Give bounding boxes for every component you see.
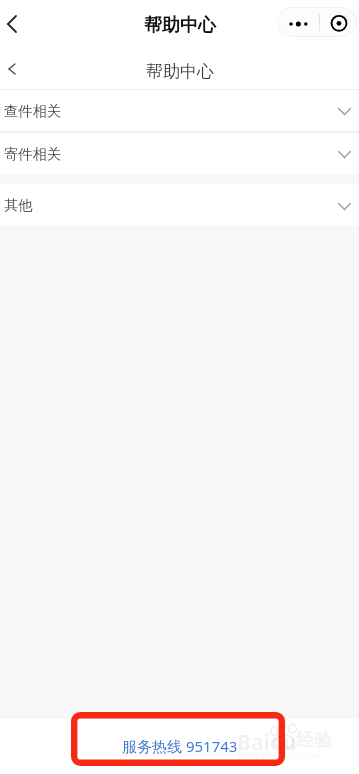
staticText: 经验 bbox=[296, 729, 332, 752]
staticText: 帮助中心 bbox=[146, 61, 214, 82]
button[interactable]: More options bbox=[277, 7, 319, 37]
button[interactable]: 服务热线 951743 bbox=[0, 719, 359, 774]
button[interactable]: Back bbox=[0, 0, 23, 44]
button[interactable]: Close mini program bbox=[320, 7, 356, 37]
staticText: jingyan.baidu.com bbox=[238, 749, 321, 762]
button[interactable]: 查件相关 bbox=[0, 90, 359, 131]
staticText: 其他 bbox=[4, 196, 33, 214]
button[interactable]: 其他 bbox=[0, 184, 359, 226]
staticText: 帮助中心 bbox=[144, 14, 216, 37]
staticText: Baidu bbox=[237, 728, 297, 757]
staticText: 寄件相关 bbox=[4, 145, 62, 163]
staticText: 查件相关 bbox=[4, 102, 62, 120]
button[interactable]: Navigate back bbox=[0, 46, 24, 91]
button[interactable]: 寄件相关 bbox=[0, 133, 359, 174]
staticText: 服务热线 951743 bbox=[122, 736, 238, 756]
